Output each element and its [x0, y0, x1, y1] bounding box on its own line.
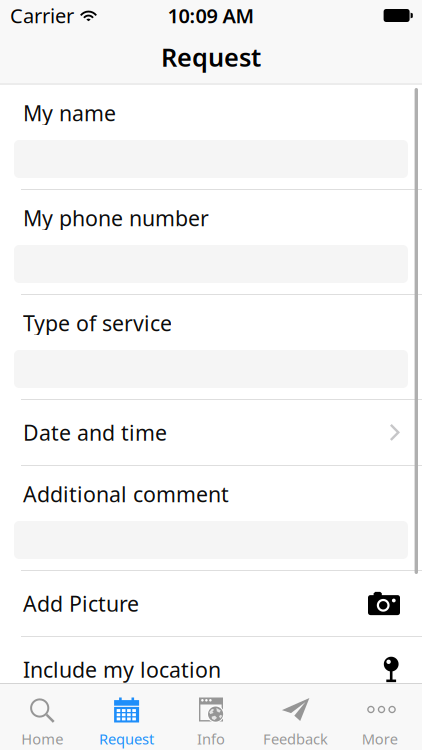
staticText: Info	[197, 729, 225, 748]
button[interactable]: Include my location	[0, 637, 422, 703]
staticText: My name	[23, 99, 116, 127]
button[interactable]: Date and time	[0, 400, 422, 466]
staticText: My phone number	[23, 204, 209, 232]
staticText: Request	[161, 40, 261, 74]
button[interactable]: Request	[84, 683, 169, 750]
staticText: Add Picture	[23, 589, 139, 618]
staticText: Carrier	[10, 2, 74, 29]
staticText: Additional comment	[23, 480, 229, 508]
staticText: Request	[99, 729, 154, 748]
button[interactable]: Feedback	[253, 683, 338, 750]
staticText: More	[362, 729, 398, 748]
staticText: Type of service	[23, 309, 172, 337]
staticText: Feedback	[263, 729, 328, 748]
button[interactable]: Info	[169, 683, 253, 750]
button[interactable]: Home	[0, 683, 84, 750]
staticText: Home	[21, 729, 63, 748]
staticText: Date and time	[23, 418, 167, 447]
staticText: 10:09 AM	[167, 2, 254, 29]
button[interactable]: More	[338, 683, 422, 750]
button[interactable]: Add Picture	[0, 571, 422, 637]
staticText: Include my location	[23, 655, 221, 684]
